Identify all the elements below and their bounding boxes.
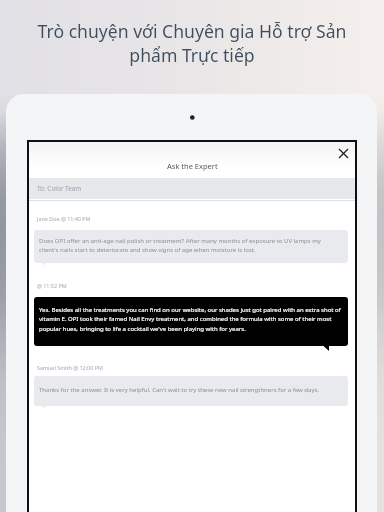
staticText: Thanks for the answer. It is very helpfu…: [39, 386, 319, 394]
staticText: Jane Doe @ 11:40 PM: [37, 215, 91, 222]
staticText: Does OPI offer an anti-age nail polish o…: [39, 237, 339, 254]
staticText: @ 11:52 PM: [37, 282, 67, 289]
staticText: Ask the Expert: [167, 161, 218, 171]
staticText: Trò chuyện với Chuyên gia Hỗ trợ Sản phẩ…: [26, 19, 358, 67]
button[interactable]: Close: [334, 144, 352, 162]
button[interactable]: To: Color Team: [29, 178, 355, 199]
button[interactable]: Thanks for the answer. It is very helpfu…: [34, 376, 348, 406]
button[interactable]: Does OPI offer an anti-age nail polish o…: [34, 230, 348, 263]
staticText: Yes. Besides all the treatments you can …: [39, 306, 343, 333]
staticText: To: Color Team: [37, 184, 82, 193]
button[interactable]: Yes. Besides all the treatments you can …: [34, 297, 348, 346]
staticText: Samuel Smith @ 12:00 PM: [37, 364, 103, 371]
